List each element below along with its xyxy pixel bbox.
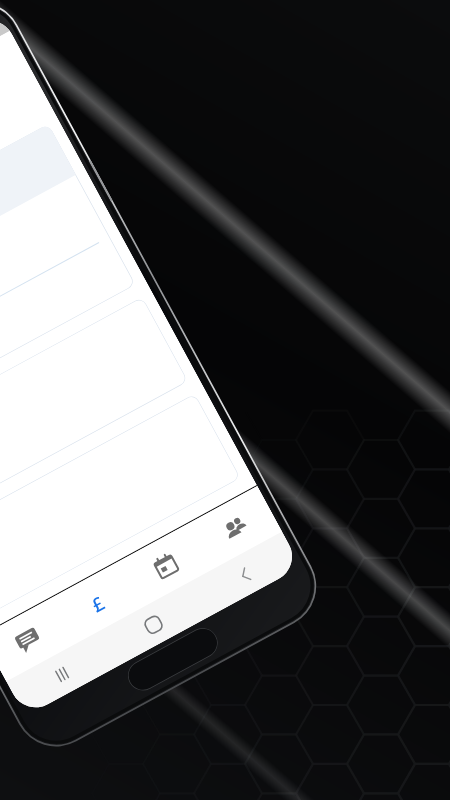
button[interactable]: Contacts [188, 486, 282, 569]
staticText: £ [87, 590, 107, 615]
button[interactable]: Payments [50, 561, 143, 644]
button[interactable] [0, 394, 240, 617]
button[interactable]: Messages [0, 598, 75, 681]
button[interactable] [0, 297, 188, 521]
button[interactable]: Calendar [118, 524, 213, 607]
button[interactable]: Home [98, 582, 209, 667]
button[interactable]: Demo [0, 124, 135, 424]
button[interactable]: Back [190, 532, 301, 617]
button[interactable]: Recents [6, 632, 117, 717]
